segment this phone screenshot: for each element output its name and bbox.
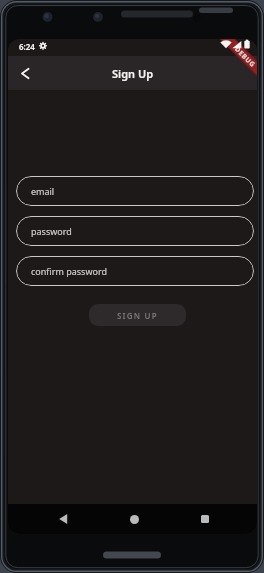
button[interactable]: confirm password [16, 256, 254, 286]
button[interactable]: SIGN UP [89, 304, 186, 326]
staticText: DEBUG [233, 45, 257, 69]
button[interactable] [191, 505, 219, 533]
staticText: SIGN UP [117, 310, 158, 321]
staticText: password [31, 225, 72, 237]
button[interactable] [120, 505, 148, 533]
button[interactable] [49, 505, 77, 533]
button[interactable]: password [16, 216, 254, 246]
staticText: Sign Up [112, 66, 154, 81]
staticText: 6:24 [19, 41, 35, 52]
button[interactable] [8, 56, 42, 90]
staticText: confirm password [31, 265, 108, 277]
staticText: email [31, 185, 55, 197]
button[interactable]: email [16, 176, 254, 206]
